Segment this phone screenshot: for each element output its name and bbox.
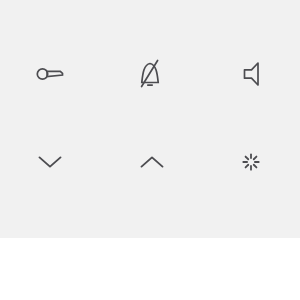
button[interactable]: Speaker volume	[230, 51, 276, 97]
button[interactable]: Move down	[27, 139, 73, 185]
button[interactable]: Move up	[129, 139, 175, 185]
button[interactable]: Brightness	[228, 139, 274, 185]
button[interactable]: Mute ringer	[127, 51, 173, 97]
button[interactable]: Key access	[27, 51, 73, 97]
